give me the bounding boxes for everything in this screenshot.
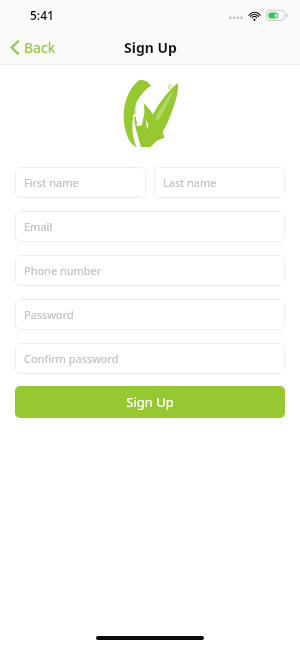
staticText: Sign Up [126,393,174,411]
button[interactable]: First name [15,167,146,198]
staticText: Phone number [24,263,102,278]
staticText: Email [24,219,53,234]
button[interactable]: Password [15,299,285,330]
staticText: Confirm password [24,351,119,366]
button[interactable]: Phone number [15,255,285,286]
staticText: 5:41 [30,7,54,23]
staticText: Back [24,38,56,57]
staticText: First name [24,175,79,190]
staticText: Last name [163,175,217,190]
button[interactable]: Back [0,32,68,63]
button[interactable]: Last name [154,167,285,198]
staticText: Sign Up [124,38,177,57]
button[interactable]: Email [15,211,285,242]
button[interactable]: Sign Up [15,386,285,418]
staticText: Password [24,307,74,322]
button[interactable]: Confirm password [15,343,285,374]
